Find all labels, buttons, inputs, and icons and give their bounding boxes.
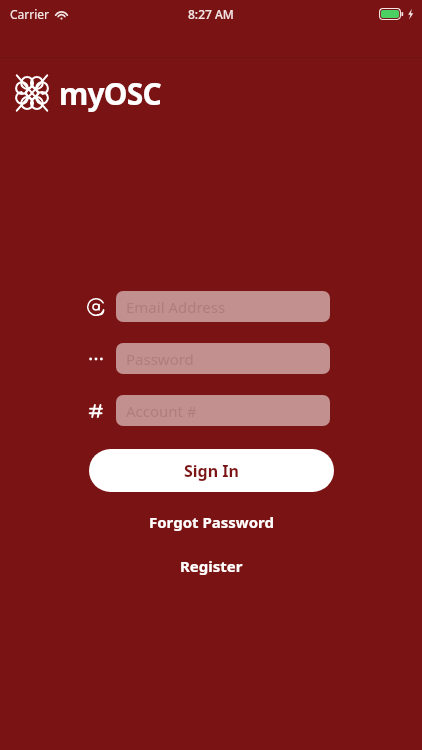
button[interactable]: Register	[0, 551, 422, 581]
staticText: 8:27 AM	[188, 6, 234, 22]
button[interactable]: myOSC home	[13, 71, 161, 115]
button[interactable]: Account #	[116, 395, 330, 426]
staticText: Forgot Password	[149, 512, 274, 532]
staticText: Password	[126, 349, 194, 369]
button[interactable]: Forgot Password	[0, 507, 422, 537]
button[interactable]: Email Address	[116, 291, 330, 322]
staticText: Carrier	[10, 6, 50, 22]
staticText: Account #	[126, 401, 197, 421]
staticText: Register	[180, 556, 243, 576]
button[interactable]: Password	[116, 343, 330, 374]
staticText: Email Address	[126, 297, 226, 317]
staticText: myOSC	[59, 73, 161, 114]
button[interactable]: Sign In	[89, 449, 334, 492]
staticText: Sign In	[184, 460, 239, 482]
